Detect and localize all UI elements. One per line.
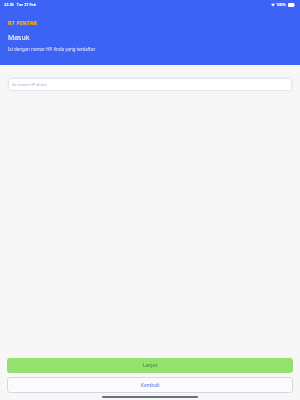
staticText: Isi nomor HP di sini [12,82,47,87]
button[interactable]: Lanjut [7,358,293,373]
staticText: Masuk [8,33,30,42]
other: Wi-Fi [271,3,275,7]
other: Battery full [288,3,295,7]
button[interactable]: Kembali [7,377,293,393]
staticText: Kembali [141,382,160,389]
staticText: Isi dengan nomor HP Anda yang terdaftar [8,46,96,52]
staticText: RT PINTAR [8,19,38,26]
button[interactable]: Isi nomor HP di sini [8,78,292,91]
staticText: 22.36 Tue 27 Feb [4,2,37,7]
staticText: Lanjut [143,362,158,369]
staticText: 100% [276,2,286,7]
